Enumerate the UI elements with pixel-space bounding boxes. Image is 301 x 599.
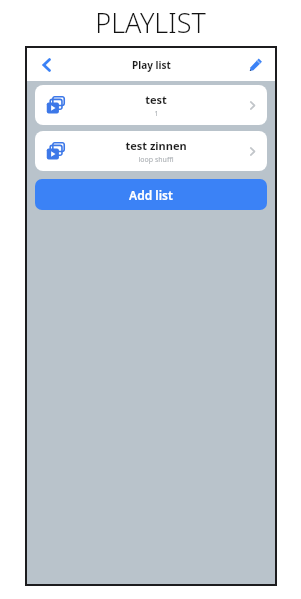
- staticText: test: [145, 92, 167, 107]
- button[interactable]: test zinnen: [35, 131, 267, 171]
- staticText: PLAYLIST: [95, 4, 206, 41]
- button[interactable]: Back: [27, 48, 67, 81]
- staticText: 1: [154, 109, 159, 119]
- staticText: Play list: [132, 58, 171, 72]
- button[interactable]: Add list: [35, 179, 267, 210]
- staticText: Add list: [129, 187, 173, 203]
- staticText: test zinnen: [125, 138, 187, 153]
- staticText: loop shuffl: [138, 155, 174, 165]
- button[interactable]: test: [35, 85, 267, 125]
- button[interactable]: Edit: [235, 48, 275, 81]
